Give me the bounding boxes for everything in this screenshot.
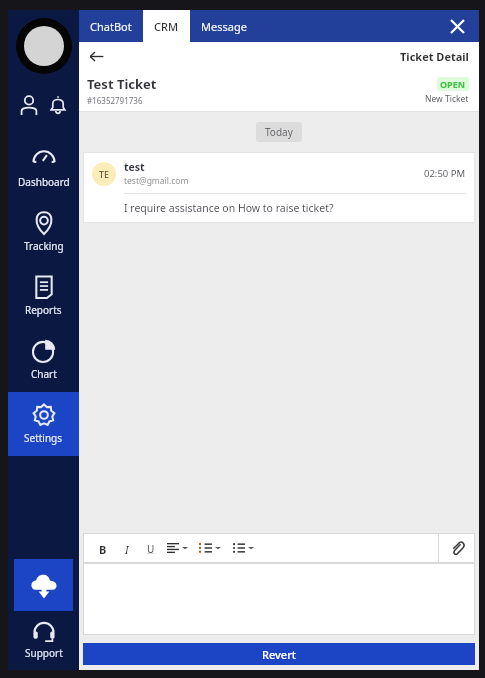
staticText: OPEN (440, 78, 466, 90)
button[interactable]: Reports (8, 264, 79, 328)
button[interactable]: Numbered list (196, 535, 229, 561)
button[interactable]: Dashboard (8, 136, 79, 200)
button[interactable] (83, 563, 475, 635)
staticText: #16352791736 (87, 95, 143, 106)
button[interactable]: Upload (14, 559, 73, 611)
button[interactable]: Align (163, 535, 196, 561)
button[interactable]: Profile (16, 18, 72, 74)
button[interactable]: Support (8, 619, 79, 670)
button[interactable]: Tracking (8, 200, 79, 264)
staticText: CRM (154, 19, 179, 34)
staticText: Revert (262, 647, 297, 662)
button[interactable]: Close (445, 14, 469, 38)
staticText: TE (99, 168, 110, 180)
staticText: New Ticket (425, 93, 469, 105)
button[interactable]: Bold (91, 535, 115, 561)
staticText: U (147, 542, 155, 554)
button[interactable]: Revert (83, 643, 475, 665)
staticText: Ticket Detail (400, 49, 469, 64)
staticText: B (99, 542, 107, 554)
button[interactable]: Chart (8, 328, 79, 392)
staticText: Tracking (24, 239, 64, 253)
staticText: I require assistance on How to raise tic… (124, 201, 334, 215)
staticText: test (124, 160, 145, 174)
button[interactable]: Notifications (45, 92, 71, 118)
button[interactable]: Bullet list (229, 535, 262, 561)
staticText: Test Ticket (87, 75, 157, 93)
button[interactable]: Account (16, 92, 42, 118)
button[interactable]: Attach file (439, 533, 475, 563)
staticText: ChatBot (90, 19, 132, 34)
button[interactable]: Message (190, 10, 258, 42)
button[interactable]: Settings (8, 392, 79, 456)
button[interactable]: ChatBot (79, 10, 143, 42)
staticText: 02:50 PM (424, 167, 466, 180)
staticText: Reports (25, 303, 62, 317)
button[interactable]: Underline (139, 535, 163, 561)
button[interactable]: CRM (143, 10, 190, 42)
staticText: Today (265, 125, 293, 139)
staticText: Chart (31, 367, 57, 381)
staticText: Settings (24, 431, 63, 445)
staticText: I (125, 542, 129, 554)
button[interactable]: Back (84, 44, 108, 68)
staticText: Dashboard (18, 175, 70, 189)
button[interactable]: Italic (115, 535, 139, 561)
staticText: Support (25, 646, 63, 660)
staticText: Message (201, 19, 247, 34)
staticText: test@gmail.com (124, 175, 189, 187)
button[interactable]: TE (83, 152, 475, 223)
